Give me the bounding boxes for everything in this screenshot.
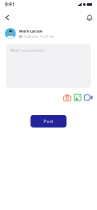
button[interactable]: Mark Carson [0, 26, 97, 41]
button[interactable]: Photo [74, 93, 82, 101]
staticText: Posted on 10:20 am [23, 34, 54, 38]
staticText: 9:41 [5, 1, 15, 8]
button[interactable]: Video [84, 93, 93, 101]
button[interactable]: Camera [63, 93, 71, 101]
button[interactable]: Post [30, 115, 66, 127]
button[interactable]: Back [2, 12, 13, 23]
staticText: What's on your mind... [10, 48, 46, 53]
staticText: Post [43, 118, 53, 124]
staticText: Mark Carson [19, 28, 42, 34]
button[interactable]: Notifications [84, 12, 95, 23]
